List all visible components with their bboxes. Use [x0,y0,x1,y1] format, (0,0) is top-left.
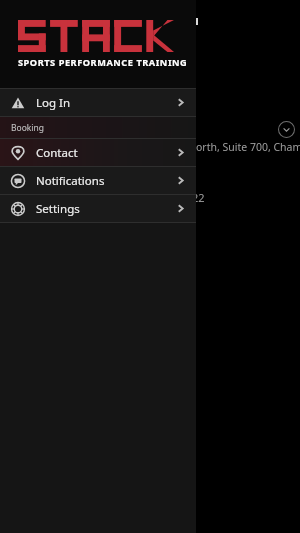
staticText: Settings [36,201,80,217]
staticText: SPORTS PERFORMANCE TRAINING [18,56,188,69]
button[interactable]: Notifications [0,167,196,194]
staticText: Contact [36,145,78,161]
button[interactable]: Settings [0,195,196,222]
staticText: Booking [11,122,45,134]
staticText: Notifications [36,173,105,189]
staticText: orth, Suite 700, Champlin, [196,140,300,154]
button[interactable]: Log In [0,89,196,116]
staticText: Log In [36,95,71,111]
staticText: 22 [192,190,205,205]
button[interactable]: Contact [0,139,196,166]
button[interactable]: Expand [278,121,295,138]
